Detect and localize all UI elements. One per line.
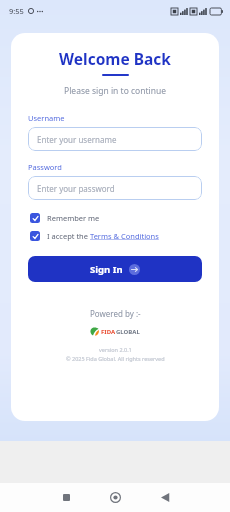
staticText: FIDA <box>101 328 116 336</box>
staticText: GLOBAL <box>116 328 140 336</box>
button[interactable]: Sign In <box>28 256 202 282</box>
staticText: Sign In <box>90 263 123 276</box>
staticText: Enter your username <box>37 134 117 145</box>
button[interactable]: Remember me <box>30 213 219 223</box>
staticText: Powered by :- <box>90 308 141 319</box>
staticText: 9:55 <box>9 6 24 16</box>
button[interactable]: Enter your password <box>28 176 202 200</box>
staticText: © 2025 Fida Global. All rights reserved <box>66 355 165 362</box>
staticText: I accept the <box>47 231 90 241</box>
staticText: Remember me <box>47 213 100 223</box>
staticText: Welcome Back <box>59 48 171 69</box>
staticText: Enter your password <box>37 183 115 194</box>
button[interactable]: I accept the <box>30 231 219 241</box>
button[interactable]: Back <box>155 483 175 512</box>
staticText: Password <box>28 162 62 172</box>
staticText: Terms & Conditions <box>90 231 159 241</box>
button[interactable]: Home <box>105 483 125 512</box>
staticText: Username <box>28 113 65 123</box>
staticText: version 2.0.1 <box>99 346 132 353</box>
staticText: Please sign in to continue <box>64 85 167 97</box>
button[interactable]: Recent apps <box>56 483 76 512</box>
button[interactable]: Enter your username <box>28 127 202 151</box>
